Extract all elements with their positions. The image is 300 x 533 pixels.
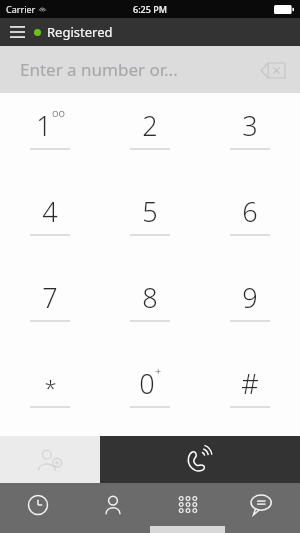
staticText: + <box>155 363 162 378</box>
button[interactable]: 0 <box>100 350 200 436</box>
button[interactable]: 1 <box>0 93 100 178</box>
staticText: 3 <box>242 107 258 144</box>
staticText: 8 <box>142 279 158 316</box>
staticText: Enter a number or... <box>20 58 178 81</box>
staticText: * <box>44 372 57 402</box>
button[interactable]: Recents <box>0 483 75 533</box>
button[interactable]: 9 <box>200 264 300 350</box>
button[interactable]: Messages <box>225 483 300 533</box>
button[interactable]: Enter a number or... <box>0 46 300 93</box>
button[interactable]: # <box>200 350 300 436</box>
button[interactable]: Menu <box>0 18 34 46</box>
staticText: 0 <box>139 365 155 402</box>
button[interactable]: 7 <box>0 264 100 350</box>
button[interactable]: Keypad <box>150 483 225 533</box>
button[interactable]: 2 <box>100 93 200 178</box>
staticText: 5 <box>142 193 158 230</box>
staticText: 1 <box>36 107 52 144</box>
button[interactable]: 6 <box>200 178 300 264</box>
button[interactable]: 8 <box>100 264 200 350</box>
staticText: oo <box>52 105 65 120</box>
staticText: 6 <box>242 193 258 230</box>
button[interactable]: Contacts <box>75 483 150 533</box>
button[interactable]: Call <box>100 436 300 483</box>
button[interactable]: Backspace <box>256 57 290 83</box>
staticText: 4 <box>42 193 58 230</box>
staticText: Registered <box>47 23 113 41</box>
button[interactable]: 3 <box>200 93 300 178</box>
button[interactable]: 4 <box>0 178 100 264</box>
staticText: 9 <box>242 279 258 316</box>
staticText: 6:25 PM <box>133 3 167 15</box>
button[interactable]: * <box>0 350 100 436</box>
staticText: 7 <box>42 279 58 316</box>
staticText: # <box>241 365 259 402</box>
staticText: 2 <box>142 107 158 144</box>
button[interactable]: 5 <box>100 178 200 264</box>
staticText: Carrier <box>6 3 36 15</box>
